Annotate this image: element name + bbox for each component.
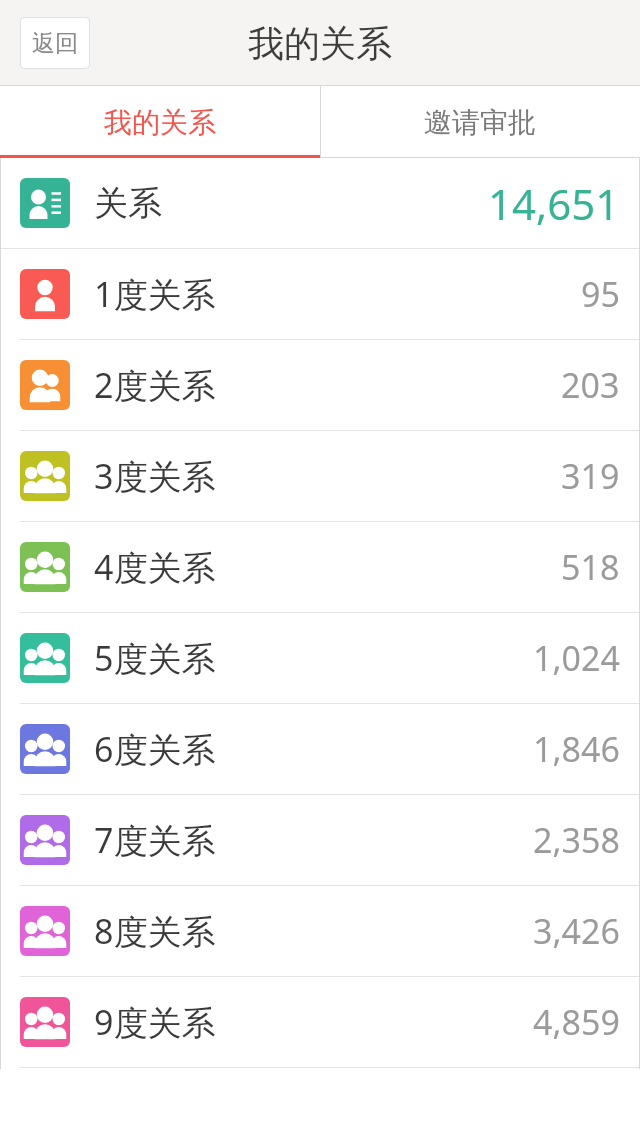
button[interactable]: 4度关系	[0, 522, 640, 612]
staticText: 14,651	[488, 175, 620, 232]
staticText: 3度关系	[94, 453, 216, 499]
button[interactable]: 3度关系	[0, 431, 640, 521]
staticText: 319	[561, 453, 620, 499]
staticText: 2,358	[533, 817, 620, 863]
staticText: 6度关系	[94, 726, 216, 772]
staticText: 我的关系	[104, 105, 216, 140]
staticText: 4度关系	[94, 544, 216, 590]
staticText: 4,859	[533, 999, 620, 1045]
staticText: 8度关系	[94, 908, 216, 954]
staticText: 1,024	[533, 635, 620, 681]
staticText: 邀请审批	[424, 105, 536, 140]
button[interactable]: 返回	[20, 17, 90, 69]
staticText: 关系	[94, 182, 162, 225]
staticText: 2度关系	[94, 362, 216, 408]
staticText: 返回	[32, 29, 78, 58]
staticText: 7度关系	[94, 817, 216, 863]
button[interactable]: 2度关系	[0, 340, 640, 430]
button[interactable]: 邀请审批	[320, 86, 640, 158]
staticText: 1,846	[533, 726, 620, 772]
staticText: 3,426	[533, 908, 620, 954]
button[interactable]: 9度关系	[0, 977, 640, 1067]
staticText: 203	[561, 362, 620, 408]
staticText: 95	[581, 271, 620, 317]
button[interactable]: 6度关系	[0, 704, 640, 794]
button[interactable]: 1度关系	[0, 249, 640, 339]
staticText: 9度关系	[94, 999, 216, 1045]
button[interactable]: 7度关系	[0, 795, 640, 885]
staticText: 我的关系	[248, 21, 392, 66]
staticText: 518	[561, 544, 620, 590]
staticText: 5度关系	[94, 635, 216, 681]
staticText: 1度关系	[94, 271, 216, 317]
button[interactable]: 关系	[0, 158, 640, 248]
button[interactable]: 我的关系	[0, 86, 320, 158]
button[interactable]: 8度关系	[0, 886, 640, 976]
button[interactable]: 5度关系	[0, 613, 640, 703]
